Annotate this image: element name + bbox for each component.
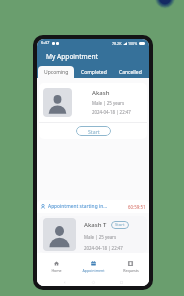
button[interactable]: Requests bbox=[112, 253, 149, 279]
staticText: Upcoming bbox=[44, 69, 69, 76]
staticText: Start bbox=[115, 222, 125, 228]
staticText: Akash bbox=[92, 89, 110, 97]
staticText: Male | 25 years bbox=[92, 100, 125, 106]
staticText: My Appointment bbox=[46, 52, 98, 61]
button[interactable]: Start bbox=[111, 221, 129, 229]
staticText: Appointment bbox=[82, 268, 105, 273]
button[interactable]: Start bbox=[76, 126, 111, 136]
staticText: Appointment starting in... bbox=[48, 203, 108, 210]
button[interactable]: Appointment bbox=[75, 253, 112, 279]
button[interactable]: Upcoming bbox=[38, 66, 74, 78]
staticText: 6:47 bbox=[41, 40, 50, 46]
staticText: Cancelled bbox=[119, 69, 142, 76]
staticText: 60:59:51 bbox=[128, 204, 146, 210]
staticText: 2024-04-18 | 22:47 bbox=[92, 109, 131, 115]
staticText: 78.2K bbox=[112, 41, 122, 46]
button[interactable]: Akash bbox=[39, 83, 147, 139]
staticText: Home bbox=[51, 268, 62, 273]
button[interactable]: Akash T bbox=[39, 216, 147, 253]
staticText: Akash T bbox=[84, 221, 107, 229]
button[interactable]: Cancelled bbox=[113, 66, 148, 78]
staticText: 100% bbox=[128, 41, 138, 46]
button[interactable]: Home bbox=[37, 253, 75, 279]
button[interactable]: Completed bbox=[76, 66, 111, 78]
staticText: 2024-04-18 | 22:47 bbox=[84, 245, 123, 251]
staticText: Male | 25 years bbox=[84, 234, 117, 240]
staticText: Start bbox=[88, 128, 100, 135]
staticText: Completed bbox=[81, 69, 107, 76]
staticText: Requests bbox=[123, 268, 139, 273]
